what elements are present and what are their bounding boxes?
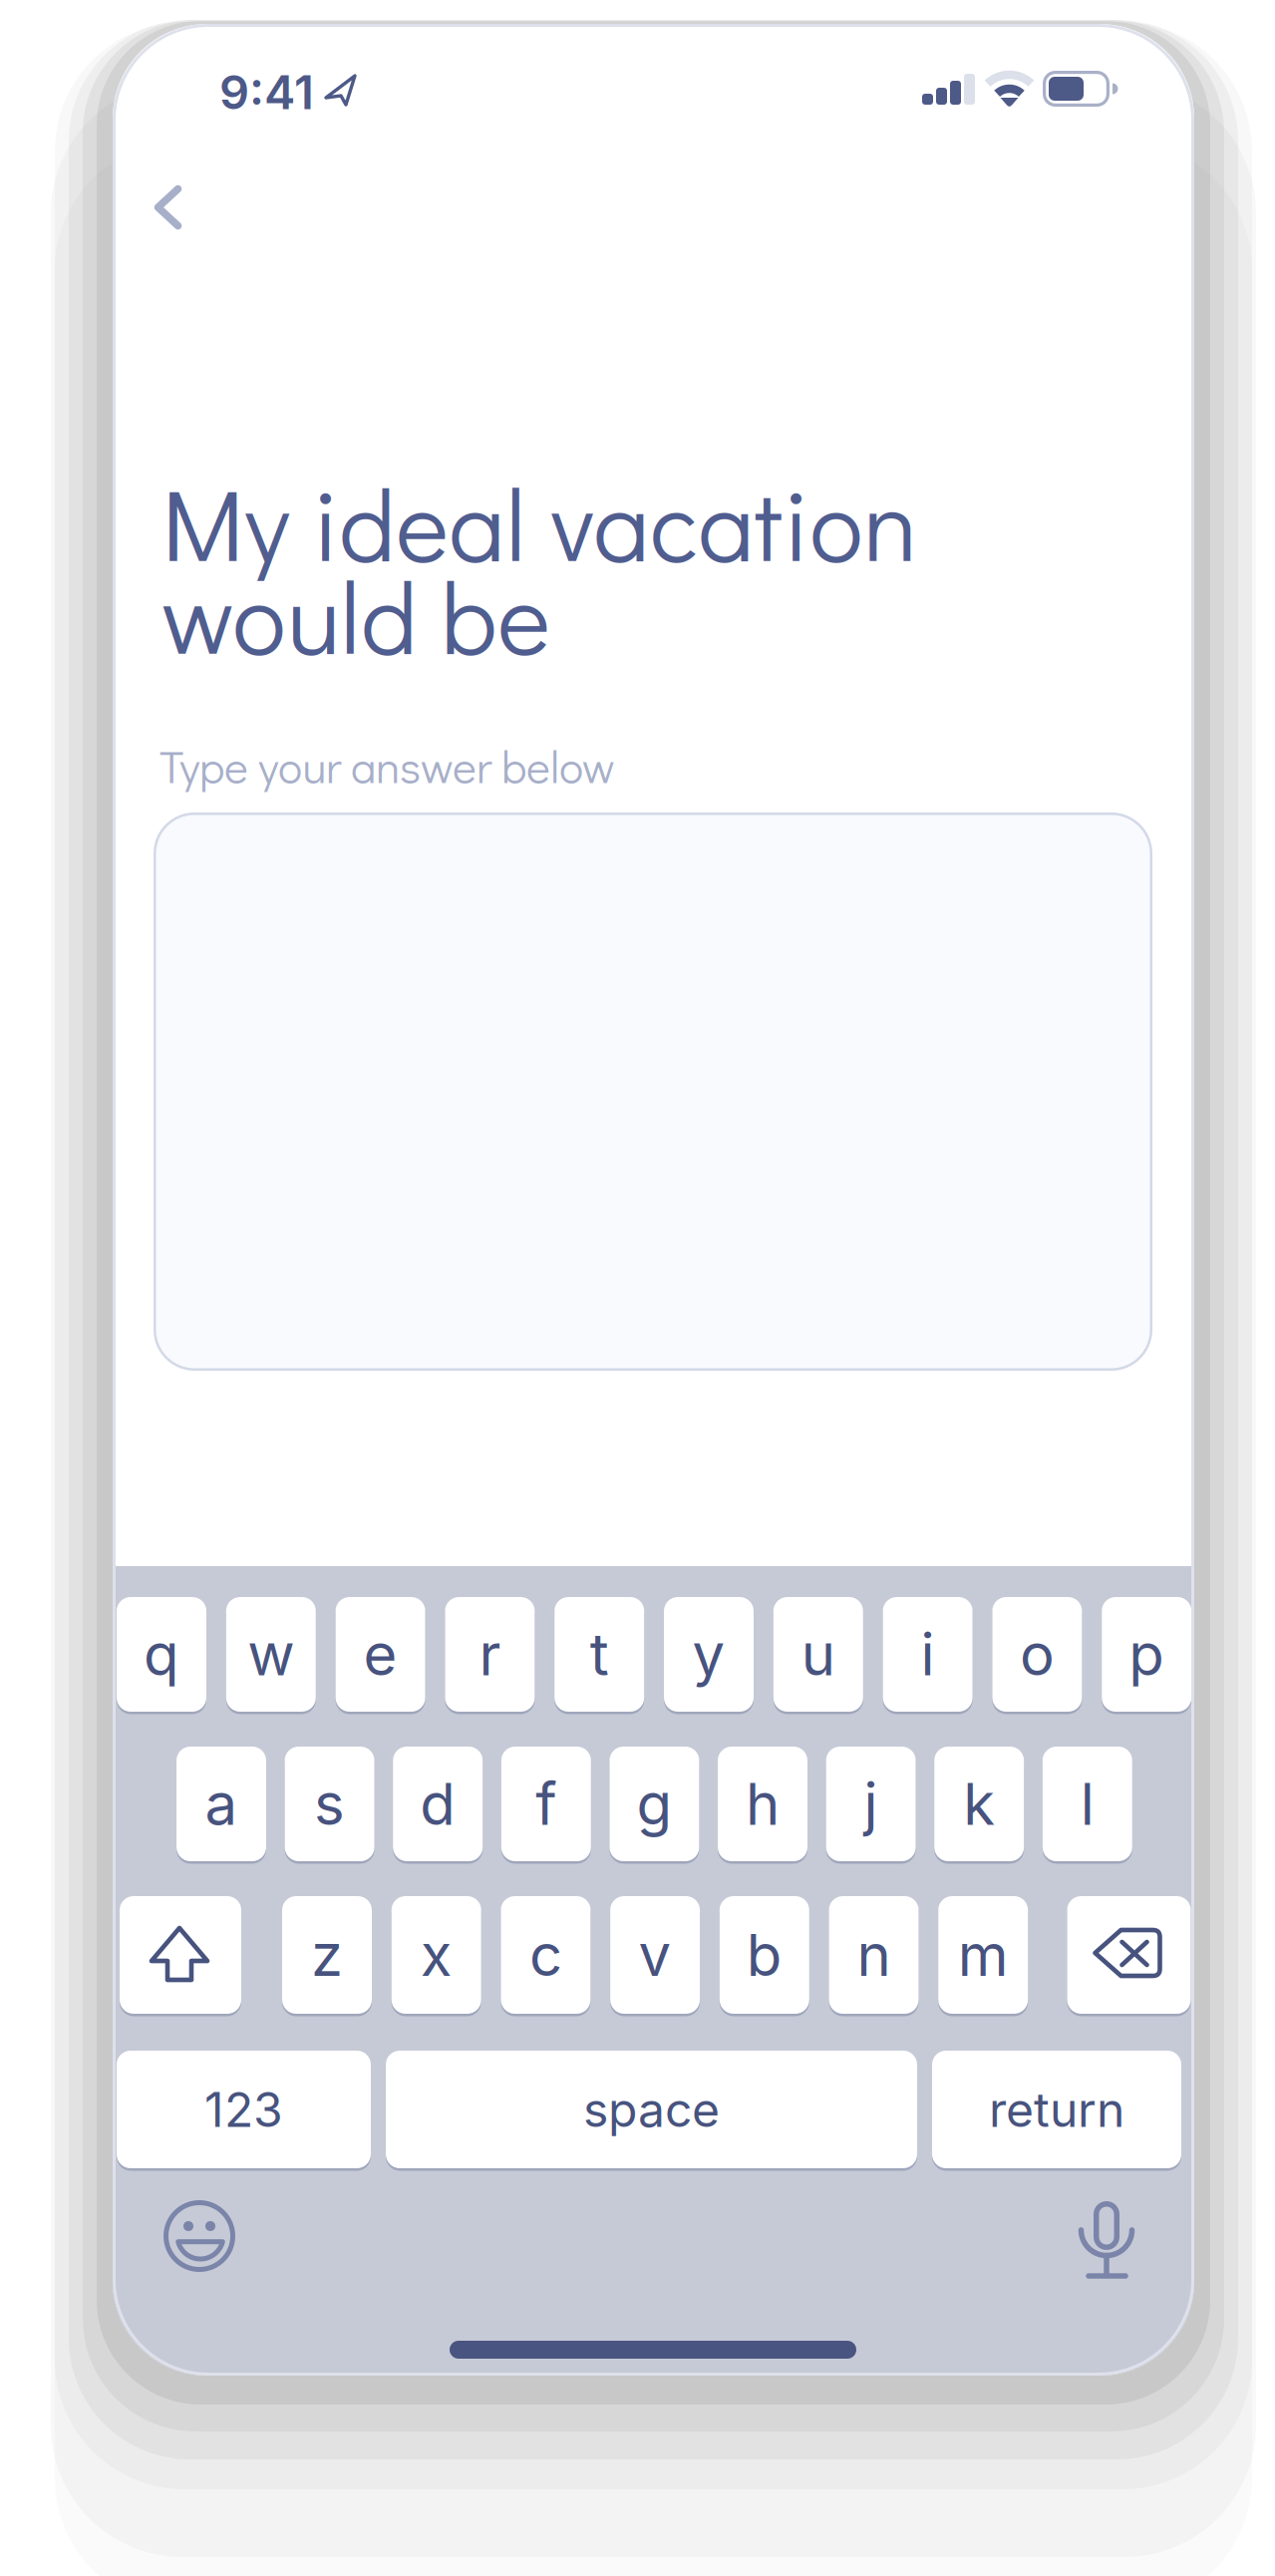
button[interactable]: m: [938, 1896, 1028, 2017]
button[interactable]: 123: [117, 2051, 371, 2171]
button[interactable]: d: [393, 1747, 483, 1864]
staticText: q: [144, 1619, 179, 1689]
button[interactable]: space: [386, 2051, 917, 2171]
button[interactable]: u: [773, 1597, 863, 1715]
staticText: 123: [204, 2081, 283, 2138]
button[interactable]: a: [176, 1747, 266, 1864]
button[interactable]: t: [554, 1597, 644, 1715]
staticText: x: [420, 1920, 452, 1990]
staticText: u: [801, 1619, 835, 1689]
button[interactable]: k: [934, 1747, 1024, 1864]
button[interactable]: Answer text area: [154, 812, 1152, 1371]
staticText: r: [479, 1619, 501, 1689]
button[interactable]: b: [720, 1896, 809, 2017]
staticText: c: [529, 1920, 562, 1990]
button[interactable]: Shift: [120, 1896, 241, 2017]
button[interactable]: f: [501, 1747, 591, 1864]
staticText: h: [746, 1769, 780, 1839]
staticText: i: [921, 1619, 935, 1689]
button[interactable]: h: [718, 1747, 807, 1864]
staticText: Type your answer below: [159, 736, 615, 795]
staticText: a: [205, 1769, 238, 1839]
button[interactable]: Emoji: [163, 2200, 235, 2272]
button[interactable]: Delete: [1067, 1896, 1191, 2017]
staticText: m: [958, 1920, 1009, 1990]
button[interactable]: e: [336, 1597, 425, 1715]
staticText: g: [636, 1769, 672, 1839]
button[interactable]: r: [445, 1597, 535, 1715]
button[interactable]: n: [829, 1896, 919, 2017]
staticText: k: [963, 1769, 995, 1839]
staticText: n: [857, 1920, 891, 1990]
button[interactable]: s: [285, 1747, 374, 1864]
button[interactable]: return: [932, 2051, 1181, 2171]
staticText: would be: [161, 548, 550, 680]
button[interactable]: q: [117, 1597, 206, 1715]
staticText: z: [311, 1920, 343, 1990]
staticText: p: [1129, 1619, 1165, 1689]
staticText: w: [248, 1619, 294, 1689]
staticText: e: [363, 1619, 397, 1689]
staticText: b: [746, 1920, 782, 1990]
button[interactable]: x: [391, 1896, 481, 2017]
button[interactable]: Dictate: [1064, 2201, 1149, 2289]
staticText: f: [536, 1769, 557, 1839]
button[interactable]: g: [609, 1747, 699, 1864]
button[interactable]: Back: [133, 163, 222, 283]
button[interactable]: j: [826, 1747, 916, 1864]
staticText: s: [314, 1769, 345, 1839]
button[interactable]: i: [883, 1597, 973, 1715]
button[interactable]: p: [1102, 1597, 1191, 1715]
staticText: t: [590, 1619, 609, 1689]
button[interactable]: y: [664, 1597, 754, 1715]
staticText: l: [1080, 1769, 1094, 1839]
button[interactable]: o: [992, 1597, 1082, 1715]
staticText: My ideal vacation: [161, 456, 917, 588]
staticText: y: [692, 1619, 725, 1689]
button[interactable]: v: [610, 1896, 700, 2017]
staticText: d: [420, 1769, 456, 1839]
button[interactable]: z: [282, 1896, 372, 2017]
staticText: o: [1020, 1619, 1055, 1689]
staticText: v: [639, 1920, 671, 1990]
staticText: return: [989, 2081, 1124, 2138]
staticText: j: [864, 1769, 878, 1839]
button[interactable]: c: [501, 1896, 591, 2017]
staticText: 9:41: [219, 64, 314, 121]
button[interactable]: l: [1043, 1747, 1132, 1864]
staticText: space: [583, 2081, 720, 2138]
button[interactable]: w: [226, 1597, 316, 1715]
